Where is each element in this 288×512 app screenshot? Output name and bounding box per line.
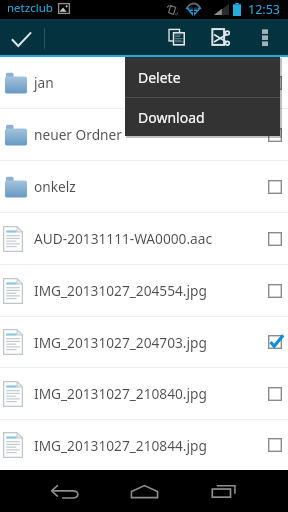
button[interactable]: Recent apps [201, 470, 247, 512]
staticText: IMG_20131027_210844.jpg [34, 436, 207, 455]
button[interactable]: IMG_20131027_204554.jpg [0, 265, 288, 316]
staticText: netzclub [7, 0, 53, 16]
staticText: IMG_20131027_204703.jpg [34, 333, 207, 352]
button[interactable]: Not selected [262, 278, 288, 304]
button[interactable]: AUD-20131111-WA0000.aac [0, 213, 288, 264]
staticText: AUD-20131111-WA0000.aac [34, 229, 213, 248]
button[interactable]: Selected [262, 329, 288, 355]
button[interactable]: Not selected [262, 122, 288, 148]
button[interactable]: More options [248, 19, 282, 55]
button[interactable]: Not selected [262, 70, 288, 96]
button[interactable]: Home [121, 470, 167, 512]
staticText: Delete [138, 68, 181, 87]
button[interactable]: Cut [199, 19, 241, 55]
button[interactable]: Not selected [262, 226, 288, 252]
button[interactable]: Copy [155, 19, 197, 55]
button[interactable]: IMG_20131027_204703.jpg [0, 317, 288, 367]
staticText: IMG_20131027_210840.jpg [34, 384, 207, 403]
button[interactable]: Back [42, 470, 88, 512]
button[interactable]: jan [0, 57, 288, 108]
button[interactable]: Delete [125, 57, 280, 97]
button[interactable]: Confirm selection [0, 19, 42, 55]
button[interactable]: neuer Ordner [0, 109, 288, 160]
button[interactable]: Download [125, 98, 280, 136]
staticText: jan [34, 73, 54, 92]
staticText: onkelz [34, 177, 76, 196]
button[interactable]: Not selected [262, 432, 288, 458]
staticText: 12:53 [248, 1, 280, 18]
staticText: Download [138, 108, 205, 127]
button[interactable]: IMG_20131027_210844.jpg [0, 420, 288, 470]
button[interactable]: IMG_20131027_210840.jpg [0, 368, 288, 419]
button[interactable]: Not selected [262, 174, 288, 200]
button[interactable]: Not selected [262, 381, 288, 407]
button[interactable]: onkelz [0, 161, 288, 212]
staticText: neuer Ordner [34, 125, 122, 144]
staticText: IMG_20131027_204554.jpg [34, 281, 207, 300]
